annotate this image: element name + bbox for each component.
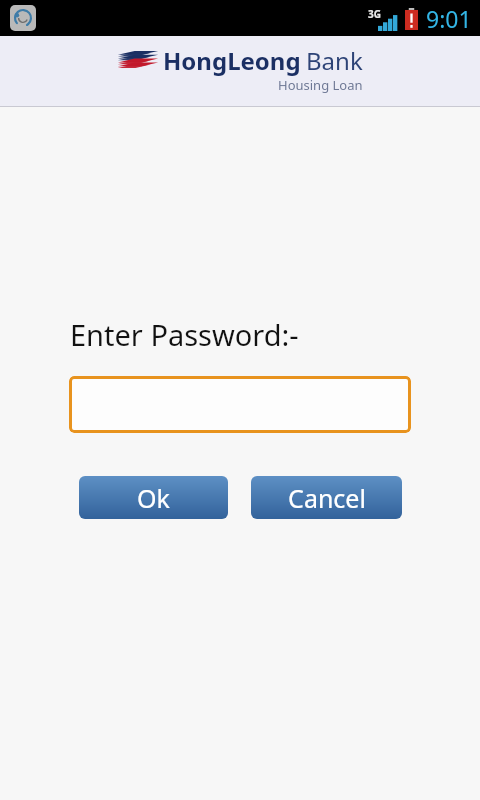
staticText: 3G bbox=[368, 7, 381, 21]
staticText: 9:01 bbox=[426, 3, 472, 34]
staticText: Cancel bbox=[288, 481, 366, 515]
staticText: Enter Password:- bbox=[70, 315, 299, 354]
staticText: Ok bbox=[137, 481, 170, 515]
staticText: Housing Loan bbox=[278, 76, 363, 94]
staticText: HongLeong bbox=[163, 44, 301, 77]
staticText: Bank bbox=[306, 44, 363, 77]
button[interactable]: Cancel bbox=[251, 476, 402, 519]
button[interactable]: Ok bbox=[79, 476, 228, 519]
button[interactable]: Password input field bbox=[69, 376, 411, 433]
